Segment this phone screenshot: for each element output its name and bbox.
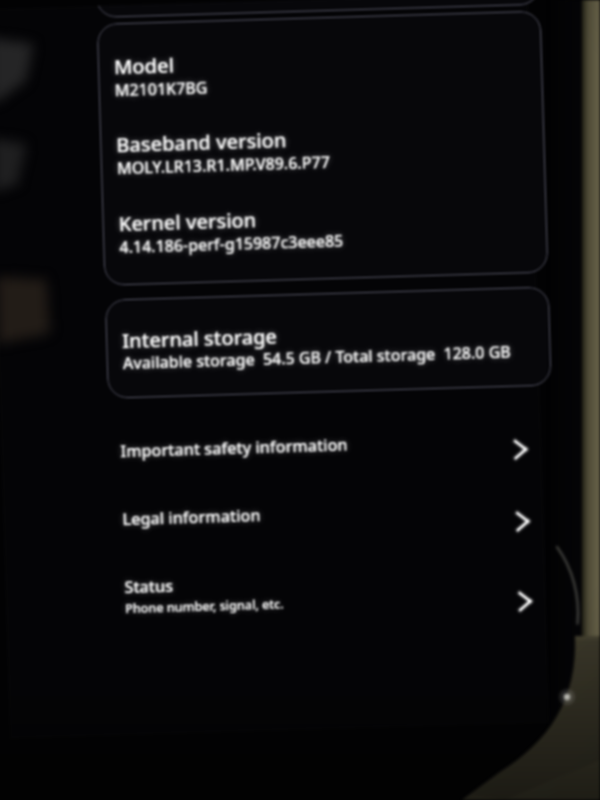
- staticText: Important safety information: [120, 434, 349, 462]
- staticText: Legal information: [122, 504, 262, 530]
- button[interactable]: Model: [114, 41, 545, 99]
- other: Status: [509, 586, 539, 617]
- staticText: Internal storage: [122, 323, 277, 354]
- staticText: M2101K7BG: [114, 77, 208, 101]
- button[interactable]: Baseband version: [116, 119, 547, 177]
- button[interactable]: Status: [113, 544, 558, 628]
- other: Legal information: [506, 506, 537, 537]
- staticText: MOLY.LR13.R1.MP.V89.6.P77: [117, 151, 330, 179]
- other: Important safety information: [504, 434, 535, 465]
- staticText: Model: [114, 52, 174, 80]
- button[interactable]: Internal storage: [122, 314, 553, 373]
- staticText: Available storage 54.5 GB / Total storag…: [122, 341, 512, 374]
- button[interactable]: [105, 287, 552, 399]
- button[interactable]: Kernel version: [118, 198, 549, 256]
- staticText: 4.14.186-perf-g15987c3eee85: [119, 230, 345, 258]
- staticText: Baseband version: [116, 126, 288, 158]
- button[interactable]: Important safety information: [109, 408, 554, 478]
- button[interactable]: [95, 0, 540, 18]
- staticText: Phone number, signal, etc.: [125, 596, 284, 617]
- button[interactable]: Legal information: [111, 476, 556, 546]
- staticText: Kernel version: [118, 206, 257, 237]
- staticText: Status: [124, 575, 174, 598]
